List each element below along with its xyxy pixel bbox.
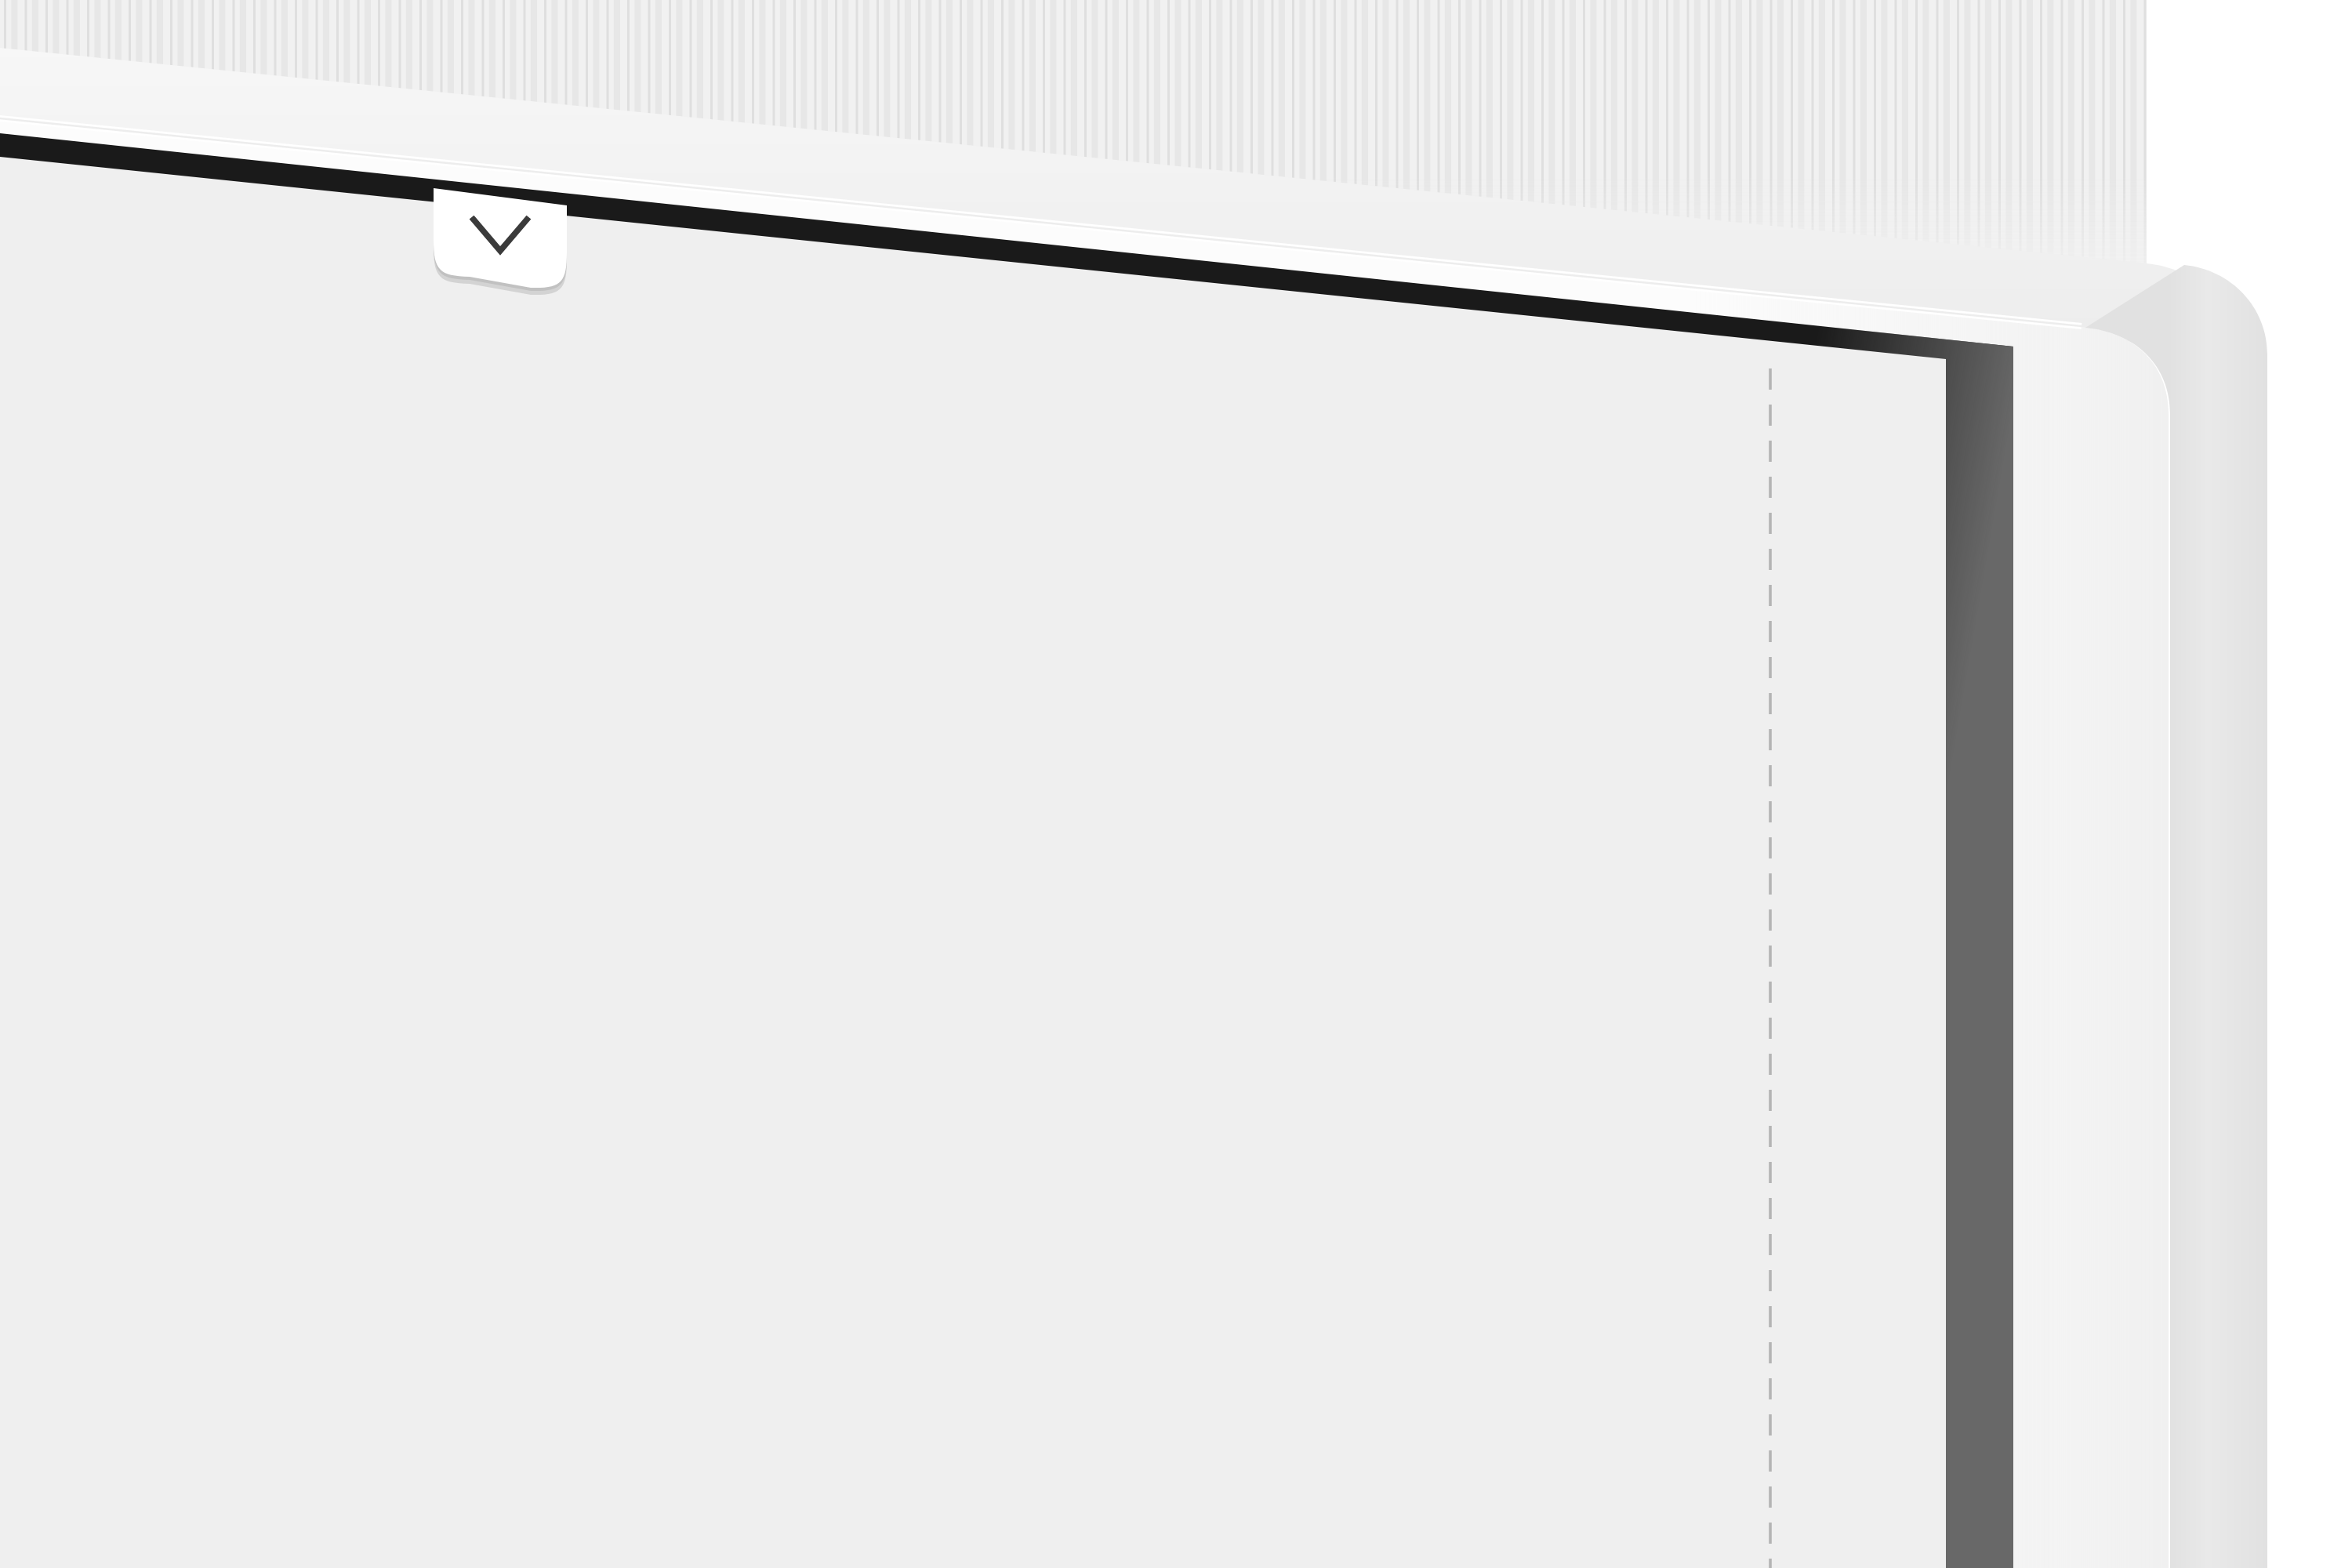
- button[interactable]: Collapse panel: [434, 194, 566, 287]
